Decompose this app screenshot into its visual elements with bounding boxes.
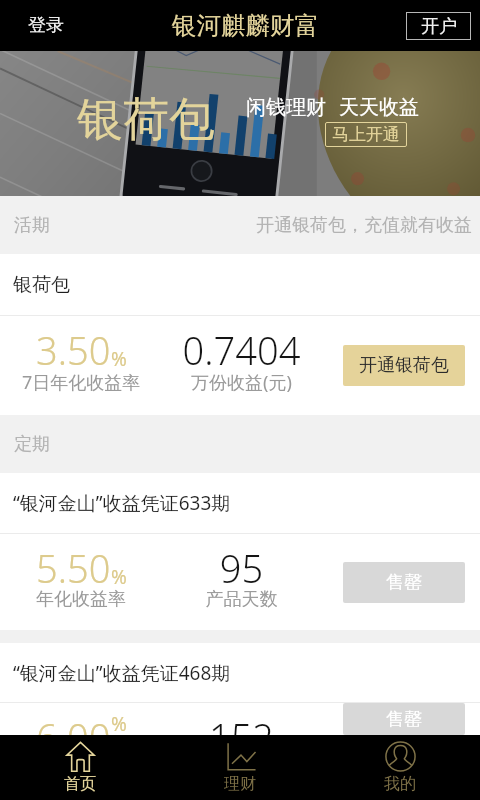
button[interactable]: 开户 (406, 12, 471, 40)
staticText: 活期 (14, 214, 50, 237)
staticText: % (111, 711, 127, 731)
staticText: 6.00 (36, 711, 111, 735)
button[interactable]: 登录 (16, 6, 76, 45)
button[interactable]: 我的 (320, 735, 480, 800)
button[interactable]: “银河金山”收益凭证468期 (0, 643, 480, 703)
button[interactable]: 马上开通 (325, 122, 407, 147)
staticText: 开通银荷包 (359, 354, 449, 377)
button[interactable]: “银河金山”收益凭证633期 (0, 473, 480, 534)
staticText: 首页 (64, 774, 96, 794)
staticText: 售罄 (386, 708, 422, 731)
staticText: % (111, 346, 127, 372)
staticText: 理财 (224, 774, 256, 794)
staticText: 开通银荷包，充值就有收益 (256, 214, 472, 237)
button[interactable]: 售罄 (343, 703, 465, 735)
staticText: 天天收益 (339, 95, 419, 120)
button[interactable]: 理财 (160, 735, 320, 800)
button[interactable]: 开通银荷包 (343, 345, 465, 386)
staticText: 银荷包 (13, 273, 70, 297)
staticText: “银河金山”收益凭证468期 (13, 660, 231, 686)
staticText: 152 (170, 711, 313, 735)
button[interactable]: 首页 (0, 735, 160, 800)
staticText: 0.7404 (170, 324, 313, 376)
staticText: 闲钱理财 (246, 95, 326, 120)
staticText: % (111, 564, 127, 590)
staticText: 定期 (14, 433, 50, 456)
staticText: 银河麒麟财富 (172, 10, 319, 41)
staticText: “银河金山”收益凭证633期 (13, 490, 231, 516)
staticText: 我的 (384, 774, 416, 794)
staticText: 5.50 (36, 542, 111, 594)
staticText: 万份收益(元) (170, 370, 313, 395)
button[interactable]: 银荷包 (0, 254, 480, 316)
staticText: 马上开通 (332, 124, 400, 145)
staticText: 登录 (28, 14, 64, 37)
staticText: 银荷包 (77, 91, 215, 149)
staticText: 3.50 (36, 324, 111, 376)
staticText: 售罄 (386, 571, 422, 594)
staticText: 产品天数 (170, 588, 313, 611)
staticText: 开户 (421, 15, 457, 38)
staticText: 年化收益率 (36, 588, 126, 611)
staticText: 7日年化收益率 (22, 370, 141, 395)
staticText: 95 (170, 542, 313, 594)
button[interactable]: 售罄 (343, 562, 465, 603)
